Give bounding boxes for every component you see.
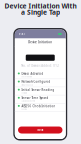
staticText: 9:41 [19,32,26,36]
staticText: Secure Boot OK [21,76,32,78]
staticText: Network Configured [21,80,50,84]
staticText: Device Activated [21,72,43,75]
button[interactable]: Initial Sensor Reading [15,87,66,95]
staticText: a Single Tap [21,8,60,17]
staticText: Pending [21,108,27,110]
button[interactable]: Network Configured [15,79,66,87]
staticText: Wi-Fi 6 / LTE Backup [21,84,33,86]
staticText: Complete [21,92,27,94]
staticText: Device Initiation With [4,1,76,10]
button[interactable]: AES256 Check Initiation [15,103,66,111]
button[interactable]: Next [18,126,62,133]
staticText: Initial Sensor Reading [21,88,54,92]
staticText: AES256 Check Initiation [21,104,55,108]
staticText: Device Initiation [28,40,52,44]
staticText: Next [37,128,43,132]
button[interactable]: Device Activated [15,71,66,79]
staticText: No. of Devices Added: 012 [21,64,59,67]
staticText: Sensor Time Synced [21,96,48,100]
button[interactable]: Sensor Time Synced [15,95,66,103]
staticText: Auto Web Device Time [21,100,35,102]
